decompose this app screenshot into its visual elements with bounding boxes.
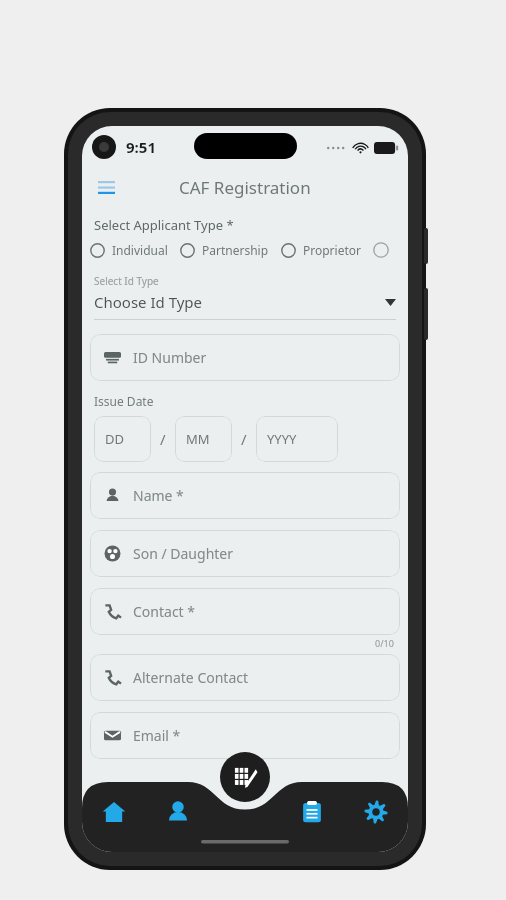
staticText: Select Id Type <box>94 274 159 288</box>
button[interactable]: Individual <box>90 240 168 260</box>
staticText: 9:51 <box>126 137 156 157</box>
button[interactable]: MM <box>175 416 232 462</box>
staticText: Individual <box>112 242 168 258</box>
staticText: Partnership <box>202 242 269 258</box>
button[interactable]: Home <box>82 790 146 834</box>
staticText: / <box>241 429 247 449</box>
button[interactable]: Name * <box>90 472 400 519</box>
staticText: Issue Date <box>94 393 154 409</box>
staticText: Son / Daughter <box>133 544 234 563</box>
button[interactable]: Contact * <box>90 588 400 635</box>
button[interactable]: Email * <box>90 712 400 759</box>
staticText: ID Number <box>133 348 207 367</box>
button[interactable]: Alternate Contact <box>90 654 400 701</box>
button[interactable]: New form <box>220 752 270 802</box>
staticText: MM <box>186 430 210 448</box>
button[interactable]: Open navigation menu <box>88 169 124 205</box>
button[interactable]: Profile <box>146 790 210 834</box>
button[interactable]: DD <box>94 416 151 462</box>
staticText: / <box>160 429 166 449</box>
button[interactable]: Proprietor <box>281 240 361 260</box>
staticText: CAF Registration <box>179 176 311 199</box>
button[interactable]: Settings <box>344 790 408 834</box>
staticText: Alternate Contact <box>133 668 249 687</box>
button[interactable]: Forms <box>280 790 344 834</box>
button[interactable]: ID Number <box>90 334 400 381</box>
staticText: Choose Id Type <box>94 292 385 312</box>
staticText: Name * <box>133 486 184 505</box>
staticText: Contact * <box>133 602 196 621</box>
staticText: Select Applicant Type * <box>94 216 234 234</box>
button[interactable]: More applicant types <box>373 242 389 258</box>
button[interactable]: Select Id Type <box>94 274 396 320</box>
staticText: Email * <box>133 726 181 745</box>
button[interactable]: Son / Daughter <box>90 530 400 577</box>
button[interactable]: YYYY <box>256 416 338 462</box>
staticText: Proprietor <box>303 242 361 258</box>
staticText: YYYY <box>267 430 297 448</box>
button[interactable]: Partnership <box>180 240 269 260</box>
staticText: 0/10 <box>375 637 394 649</box>
staticText: DD <box>105 430 124 448</box>
